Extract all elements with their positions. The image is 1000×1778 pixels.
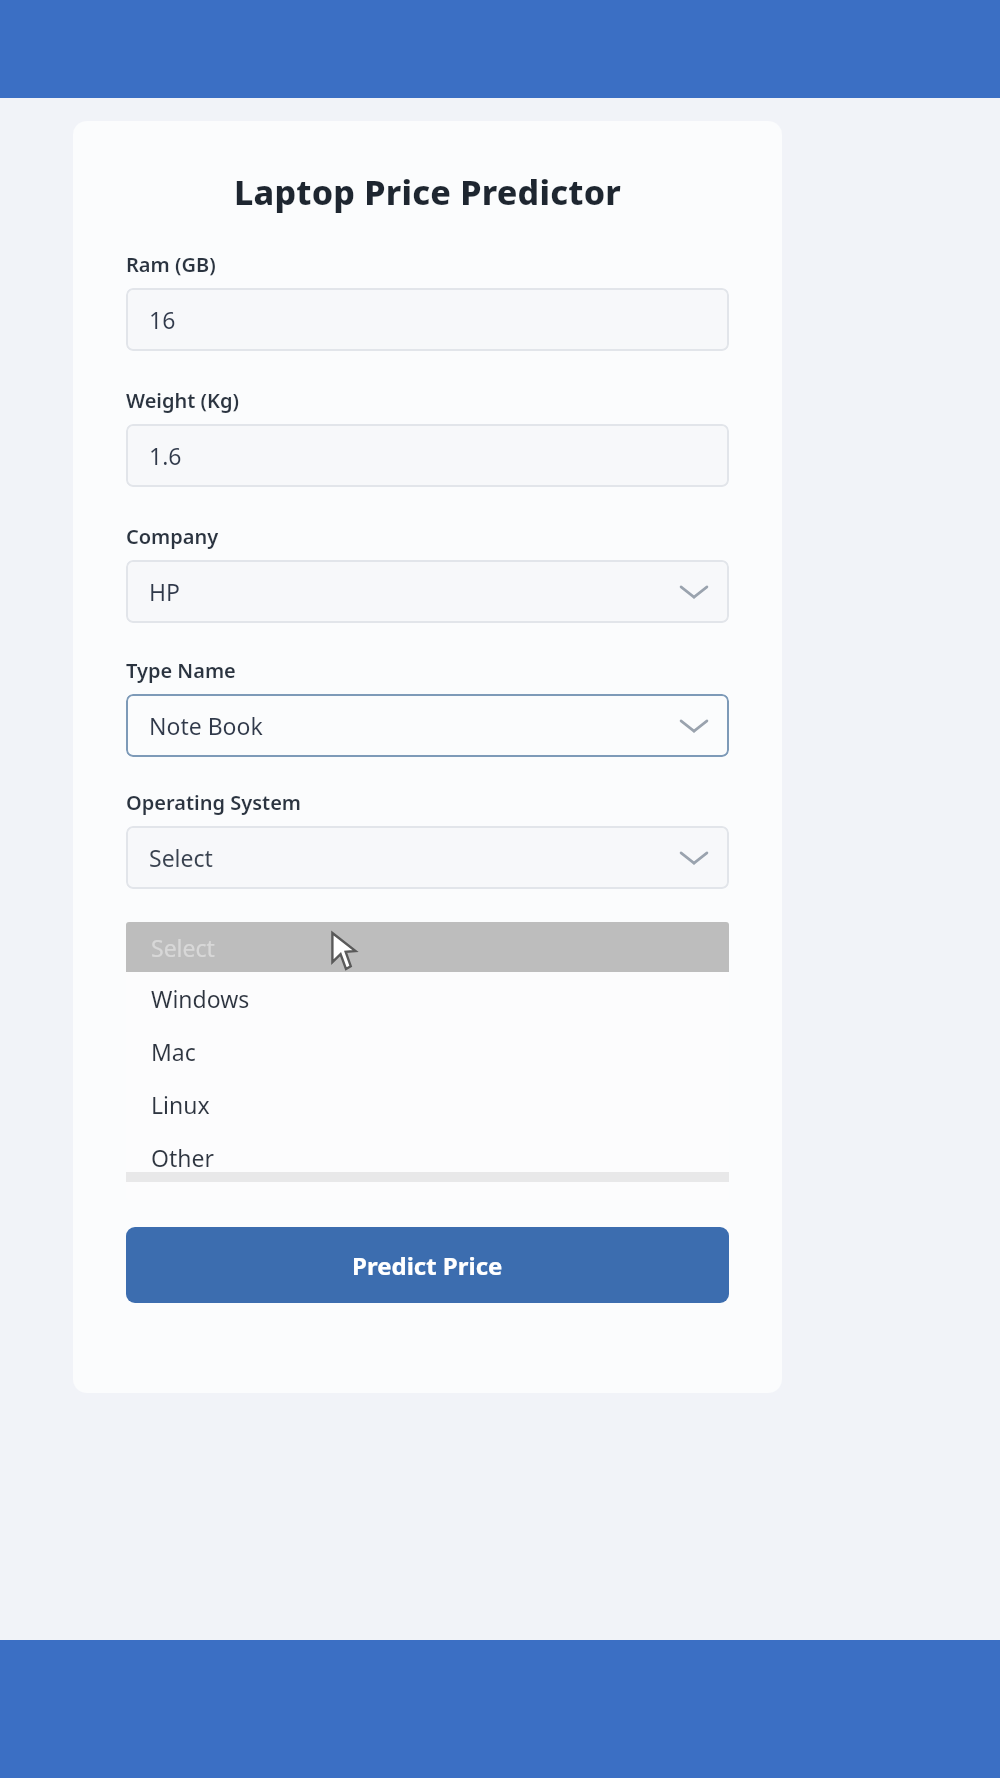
button[interactable]: Linux <box>126 1078 729 1131</box>
button[interactable]: Select <box>126 922 729 972</box>
staticText: Mac <box>151 1036 196 1067</box>
staticText: Predict Price <box>352 1249 503 1282</box>
staticText: Weight (Kg) <box>126 387 240 414</box>
staticText: Other <box>151 1142 214 1173</box>
staticText: HP <box>149 576 180 607</box>
button[interactable]: 1.6 <box>126 424 729 487</box>
staticText: Note Book <box>149 710 263 741</box>
button[interactable]: IPS <box>540 1125 574 1189</box>
staticText: 16 <box>149 304 176 335</box>
staticText: Operating System <box>126 789 302 816</box>
button[interactable]: Predict Price <box>126 1227 729 1303</box>
other: Open dropdown <box>681 718 707 734</box>
button[interactable]: Windows <box>126 972 729 1025</box>
staticText: Company <box>126 523 219 550</box>
staticText: Ram (GB) <box>126 251 216 278</box>
staticText: Linux <box>151 1089 210 1120</box>
button[interactable]: HP <box>126 560 729 623</box>
other: Open dropdown <box>681 584 707 600</box>
staticText: 1.6 <box>149 440 182 471</box>
staticText: Laptop Price Predictor <box>73 169 782 215</box>
button[interactable]: Touch Screen <box>268 1125 410 1189</box>
other: IPS <box>540 1159 570 1189</box>
button[interactable]: Note Book <box>126 694 729 757</box>
other: Touch Screen <box>268 1159 298 1189</box>
staticText: Type Name <box>126 657 236 684</box>
staticText: Select <box>151 932 215 963</box>
staticText: Windows <box>151 983 250 1014</box>
button[interactable]: Other <box>126 1131 729 1184</box>
button[interactable]: Mac <box>126 1025 729 1078</box>
staticText: Select <box>149 842 213 873</box>
other: Open dropdown <box>681 850 707 866</box>
button[interactable]: Select <box>126 826 729 889</box>
button[interactable]: 16 <box>126 288 729 351</box>
